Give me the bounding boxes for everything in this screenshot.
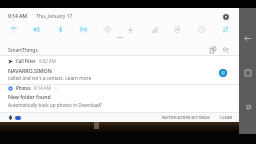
button[interactable]: Recents — [239, 98, 256, 115]
button[interactable]: Home — [239, 64, 256, 81]
button[interactable]: Wi-Fi — [4, 20, 22, 38]
button[interactable]: Airplane mode — [121, 20, 139, 38]
button[interactable]: Back — [239, 30, 256, 47]
button[interactable]: Sound — [27, 20, 45, 38]
button[interactable]: Caller photo — [215, 65, 230, 80]
button[interactable]: Devices — [207, 44, 219, 56]
staticText: 9:02 AM — [39, 58, 56, 64]
button[interactable]: Mobile data — [145, 20, 163, 38]
button[interactable]: Mobile hotspot — [74, 20, 92, 38]
staticText: SmartThings — [8, 47, 38, 54]
staticText: Photos — [16, 85, 31, 91]
staticText: CLEAR — [220, 115, 233, 120]
staticText: Call Filter — [16, 58, 36, 64]
staticText: NOTIFICATION SETTINGS — [162, 115, 210, 120]
button[interactable]: Bluetooth — [51, 20, 69, 38]
staticText: New folder found — [8, 94, 51, 101]
button[interactable]: Power saving — [192, 20, 210, 38]
staticText: called and isn't a contact. Learn more — [8, 75, 92, 81]
staticText: 9:14 AM — [8, 13, 28, 20]
staticText: NAVARRO,SIMON — [8, 67, 52, 74]
staticText: 9:14 AM — [34, 85, 51, 91]
button[interactable]: CLEAR — [220, 113, 233, 122]
button[interactable]: Settings — [220, 11, 232, 23]
button[interactable]: Location — [98, 20, 116, 38]
staticText: Automatically back up photos in Download… — [8, 102, 103, 108]
button[interactable]: Sync — [216, 20, 234, 38]
staticText: Thu, January 17 — [36, 13, 73, 20]
button[interactable]: SIM card manager — [168, 20, 186, 38]
button[interactable]: NOTIFICATION SETTINGS — [162, 113, 210, 122]
button[interactable]: Scenes — [220, 44, 232, 56]
